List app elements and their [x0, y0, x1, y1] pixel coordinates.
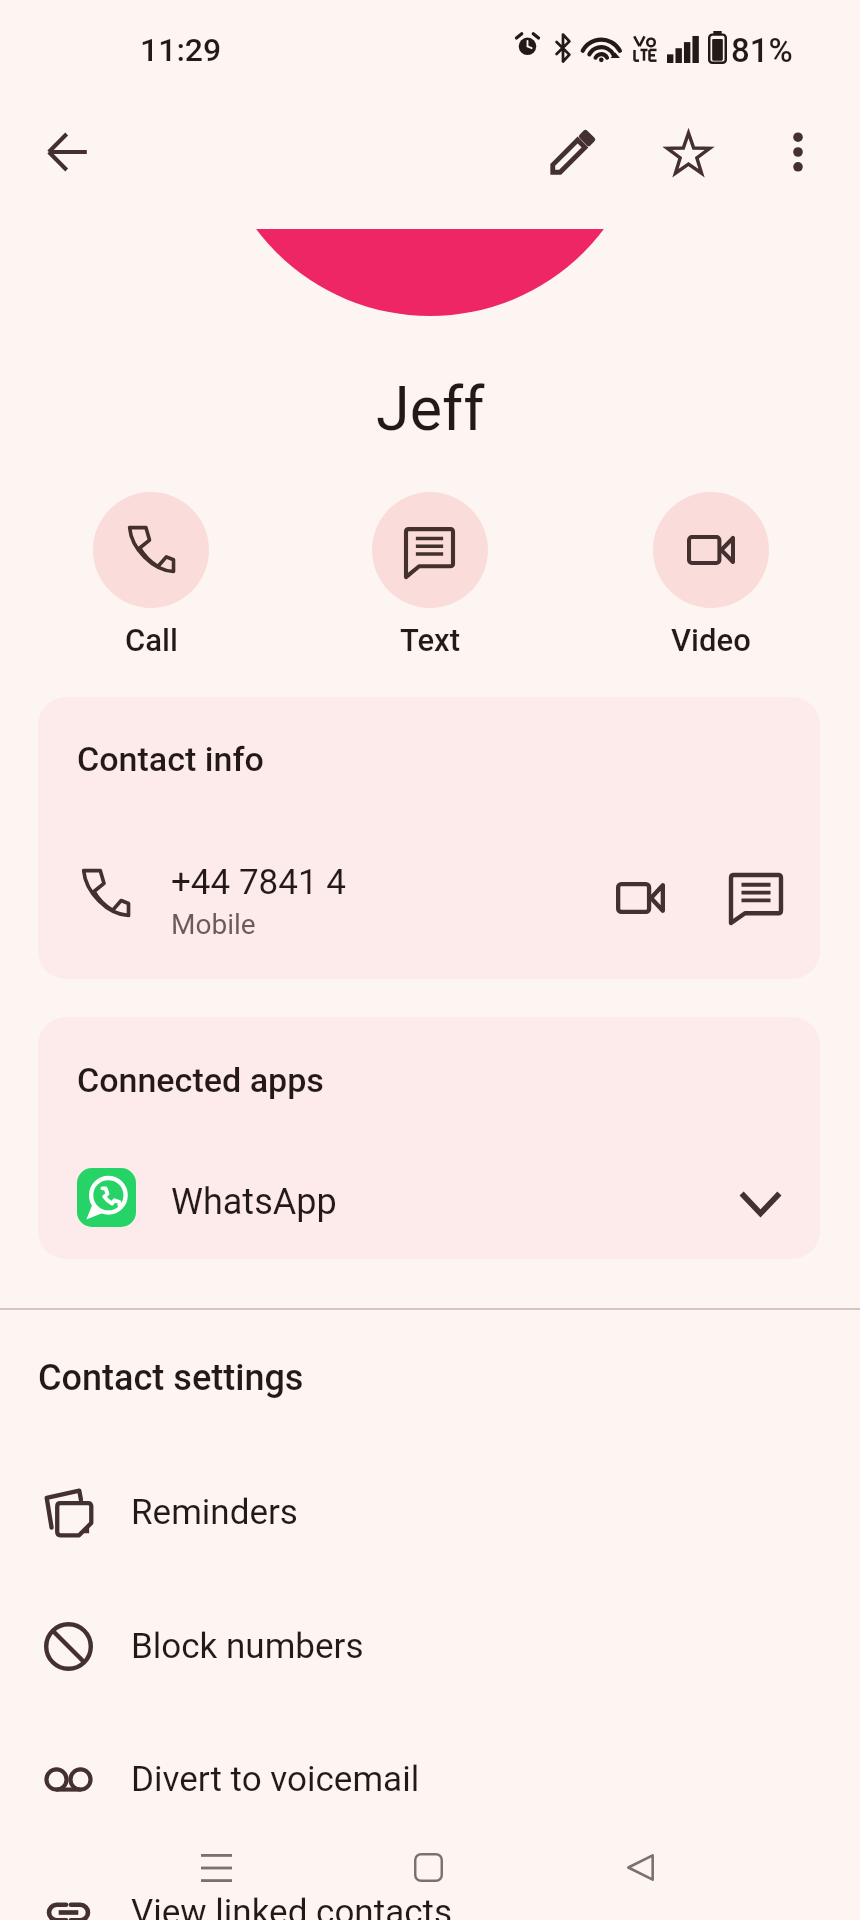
staticText: View linked contacts: [131, 1892, 452, 1920]
button[interactable]: More options: [774, 128, 822, 176]
staticText: Mobile: [171, 908, 256, 941]
button[interactable]: Send message: [720, 862, 792, 934]
staticText: 11:29: [140, 31, 222, 69]
staticText: Divert to voicemail: [131, 1759, 420, 1800]
staticText: Video: [671, 622, 751, 658]
staticText: Contact info: [77, 739, 264, 779]
button[interactable]: Expand: [728, 1172, 792, 1236]
button[interactable]: Text: [372, 492, 488, 658]
button[interactable]: View linked contacts: [0, 1846, 860, 1920]
staticText: Block numbers: [131, 1626, 364, 1667]
button[interactable]: Home: [399, 1838, 457, 1896]
button[interactable]: WhatsApp: [38, 1147, 820, 1259]
staticText: +44 7841 4: [171, 862, 346, 903]
staticText: WhatsApp: [171, 1181, 337, 1223]
button[interactable]: Recent apps: [187, 1839, 245, 1897]
button[interactable]: Video call: [604, 862, 676, 934]
staticText: 81%: [731, 31, 793, 70]
button[interactable]: Back: [611, 1838, 669, 1896]
button[interactable]: Reminders: [0, 1446, 860, 1578]
button[interactable]: Back: [43, 128, 91, 176]
button[interactable]: Add to favourites: [664, 128, 712, 176]
button[interactable]: +44 7841 4: [38, 829, 820, 947]
staticText: Call: [125, 622, 178, 658]
staticText: Reminders: [131, 1492, 298, 1533]
button[interactable]: Call: [93, 492, 209, 658]
button[interactable]: Divert to voicemail: [0, 1713, 860, 1845]
button[interactable]: Block numbers: [0, 1580, 860, 1712]
staticText: Contact settings: [38, 1357, 304, 1399]
button[interactable]: Video: [653, 492, 769, 658]
staticText: Connected apps: [77, 1060, 324, 1100]
staticText: Jeff: [376, 373, 485, 444]
staticText: Text: [400, 622, 461, 658]
button[interactable]: Edit contact: [549, 128, 597, 176]
